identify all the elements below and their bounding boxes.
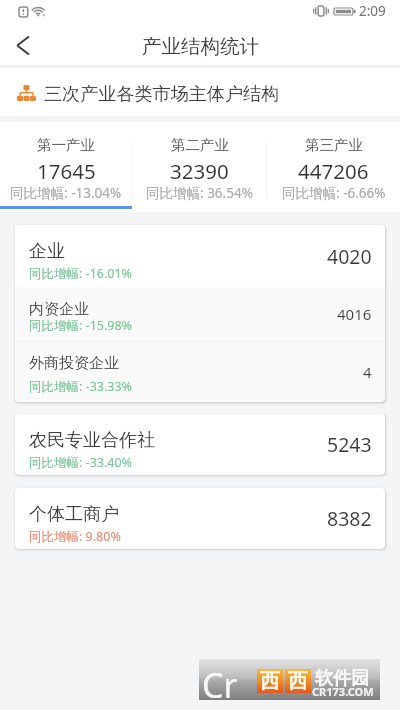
staticText: 32390 (170, 157, 229, 185)
staticText: 8382 (327, 505, 372, 532)
staticText: 个体工商户 (29, 503, 119, 526)
staticText: 农民专业合作社 (29, 429, 155, 452)
staticText: 5243 (327, 431, 372, 458)
staticText: 第三产业 (305, 136, 363, 154)
staticText: 外商投资企业 (29, 354, 119, 373)
staticText: 同比增幅: 9.80% (29, 528, 121, 545)
staticText: 同比增幅: -33.40% (29, 454, 132, 471)
staticText: Cr (202, 662, 238, 703)
button[interactable]: 第二产业 (133, 122, 266, 212)
button[interactable]: 农民专业合作社 (15, 414, 385, 475)
staticText: 同比增幅: -33.33% (29, 378, 132, 395)
staticText: 17645 (37, 157, 96, 185)
staticText: 同比增幅: -13.04% (10, 184, 122, 202)
staticText: 西 (260, 669, 280, 693)
staticText: 第一产业 (37, 136, 95, 154)
staticText: 内资企业 (29, 300, 89, 319)
staticText: 同比增幅: -6.66% (282, 184, 386, 202)
staticText: 447206 (298, 157, 369, 185)
button[interactable]: 第三产业 (267, 122, 400, 212)
button[interactable]: 企业 (15, 225, 385, 287)
staticText: 2:09 (359, 2, 386, 20)
staticText: 西 (288, 669, 308, 693)
staticText: 4 (363, 362, 372, 382)
staticText: CR173.COM (312, 684, 374, 699)
staticText: 4016 (337, 304, 372, 324)
staticText: 第二产业 (171, 136, 229, 154)
staticText: 4020 (327, 243, 372, 270)
button[interactable]: Back (0, 24, 44, 67)
staticText: 同比增幅: -15.98% (29, 317, 132, 334)
button[interactable]: 第一产业 (0, 122, 132, 212)
staticText: 软件园 (315, 667, 369, 690)
staticText: 产业结构统计 (142, 34, 259, 59)
staticText: 同比增幅: 36.54% (146, 184, 253, 202)
staticText: 三次产业各类市场主体户结构 (44, 83, 280, 106)
staticText: 企业 (29, 240, 65, 263)
button[interactable]: 内资企业 (15, 287, 385, 341)
button[interactable]: 个体工商户 (15, 488, 385, 549)
staticText: 同比增幅: -16.01% (29, 265, 132, 282)
button[interactable]: 外商投资企业 (15, 342, 385, 402)
